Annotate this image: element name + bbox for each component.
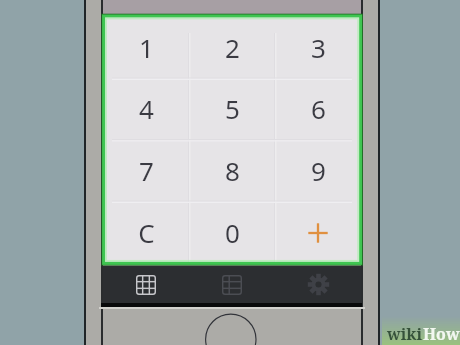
staticText: C [138,215,155,250]
staticText: 7 [139,153,154,188]
button[interactable]: 5 [189,78,275,139]
staticText: 4 [139,91,154,126]
button[interactable]: 1 [103,17,189,78]
button[interactable]: 6 [275,78,361,139]
staticText: 2 [225,30,240,65]
button[interactable]: 4 [103,78,189,139]
button[interactable]: 2 [189,17,275,78]
button[interactable]: 8 [189,139,275,201]
staticText: 3 [311,30,326,65]
button[interactable]: Keypad [103,266,189,303]
button[interactable]: 7 [103,139,189,201]
button[interactable] [275,201,361,263]
staticText: 9 [311,153,326,188]
button[interactable]: C [103,201,189,263]
staticText: 1 [139,30,154,65]
staticText: wiki [387,323,423,345]
button[interactable]: 9 [275,139,361,201]
staticText: 0 [225,215,240,250]
staticText: How [423,323,460,345]
button[interactable]: Recents list [189,266,275,303]
staticText: 6 [311,91,326,126]
button[interactable]: 3 [275,17,361,78]
staticText: 5 [225,91,240,126]
staticText: 8 [225,153,240,188]
button[interactable]: 0 [189,201,275,263]
button[interactable]: Settings [275,266,361,303]
